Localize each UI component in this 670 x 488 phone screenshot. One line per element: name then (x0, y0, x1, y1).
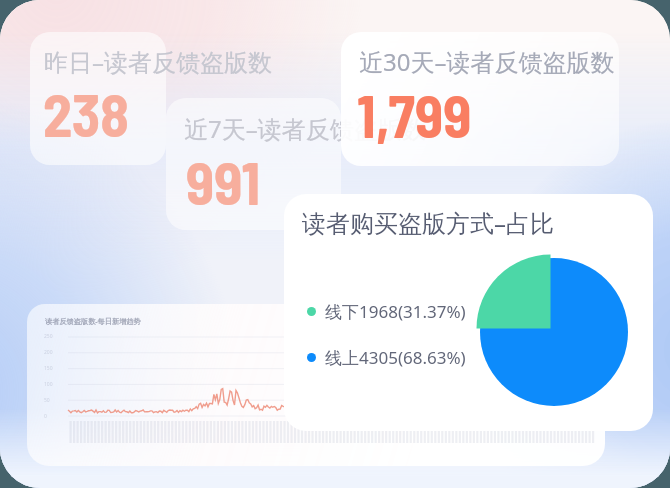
staticText: 200 (44, 349, 53, 356)
staticText: 1,799 (357, 79, 472, 149)
button[interactable] (341, 32, 619, 166)
staticText: 读者反馈盗版数-每日新增趋势 (45, 316, 141, 326)
staticText: 991 (186, 146, 261, 216)
staticText: 238 (43, 78, 129, 148)
button[interactable]: 读者购买盗版方式–占比 (284, 194, 653, 431)
staticText: 近30天–读者反馈盗版数 (359, 45, 615, 78)
button[interactable] (30, 32, 166, 165)
button[interactable] (166, 98, 341, 230)
staticText: 100 (44, 381, 53, 388)
staticText: 近7天–读者反馈盗版数 (184, 112, 426, 145)
button[interactable]: 读者反馈盗版数-每日新增趋势 (27, 304, 605, 466)
staticText: 线上4305(68.63%) (325, 346, 466, 369)
staticText: 0 (44, 413, 47, 420)
staticText: 昨日–读者反馈盗版数 (44, 45, 272, 78)
staticText: 250 (44, 333, 53, 340)
staticText: 读者购买盗版方式–占比 (302, 206, 554, 239)
staticText: 线下1968(31.37%) (325, 300, 466, 323)
staticText: 50 (44, 397, 50, 404)
staticText: 150 (44, 365, 53, 372)
